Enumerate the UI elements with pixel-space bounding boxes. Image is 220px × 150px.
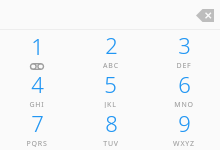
staticText: 7 xyxy=(31,108,44,138)
staticText: 3 xyxy=(178,30,191,60)
button[interactable]: 9 xyxy=(147,108,220,147)
button[interactable]: 6 xyxy=(147,69,220,108)
button[interactable]: 3 xyxy=(147,30,220,69)
staticText: GHI xyxy=(29,100,45,108)
button[interactable]: 2 xyxy=(74,30,147,69)
button[interactable]: 8 xyxy=(74,108,147,147)
button[interactable]: 4 xyxy=(0,69,74,108)
staticText: JKL xyxy=(104,100,117,108)
staticText: 4 xyxy=(31,69,44,99)
staticText: WXYZ xyxy=(173,139,195,147)
staticText: 8 xyxy=(105,108,118,138)
staticText: 6 xyxy=(178,69,191,99)
staticText: 1 xyxy=(31,31,44,61)
button[interactable]: 7 xyxy=(0,108,74,147)
staticText: 2 xyxy=(105,30,118,60)
button[interactable]: 5 xyxy=(74,69,147,108)
staticText: DEF xyxy=(176,61,192,69)
staticText: TUV xyxy=(103,139,119,147)
staticText: 9 xyxy=(178,108,191,138)
staticText: 5 xyxy=(104,69,117,99)
staticText: MNO xyxy=(174,100,194,108)
button[interactable]: Delete xyxy=(194,5,216,25)
staticText: PQRS xyxy=(26,139,48,147)
button[interactable]: 1 xyxy=(0,30,74,69)
staticText: ABC xyxy=(103,61,119,69)
